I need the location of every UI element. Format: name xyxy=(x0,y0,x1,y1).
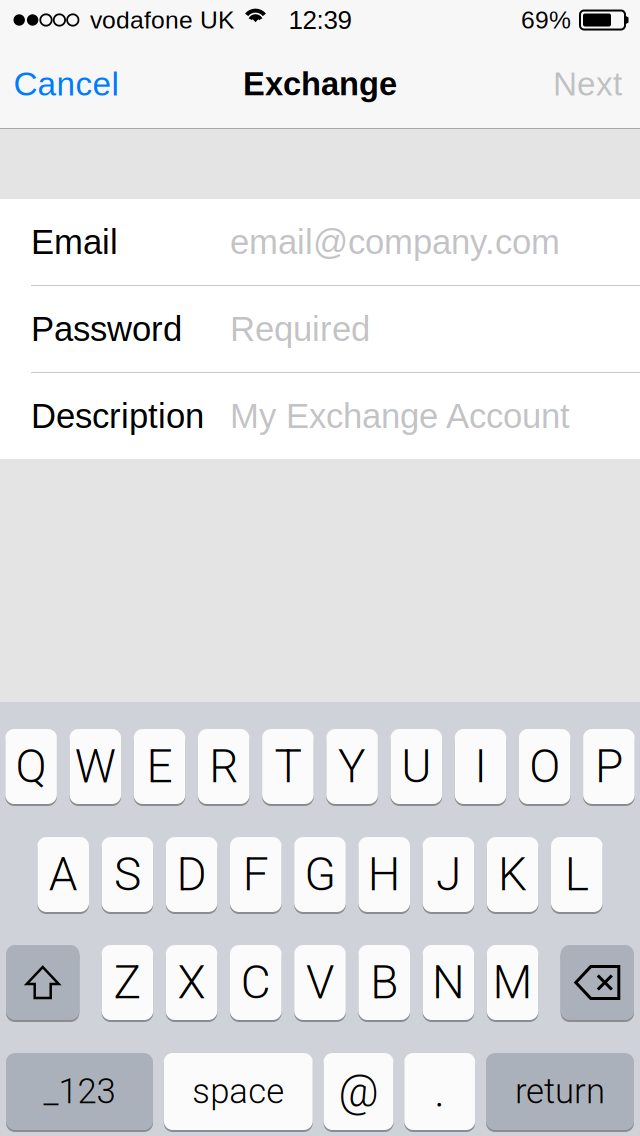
staticText: 12:39 xyxy=(288,5,351,34)
staticText: Email xyxy=(31,223,118,261)
staticText: I xyxy=(474,739,486,793)
button[interactable]: . xyxy=(404,1052,475,1131)
button[interactable]: V xyxy=(294,944,346,1021)
button[interactable]: _123 xyxy=(6,1052,153,1131)
button[interactable]: Email xyxy=(0,199,640,285)
staticText: Description xyxy=(31,397,204,435)
staticText: Password xyxy=(31,310,182,348)
staticText: E xyxy=(146,739,172,793)
button[interactable]: space xyxy=(164,1052,313,1131)
staticText: A xyxy=(49,847,78,901)
button[interactable]: Cancel xyxy=(0,40,138,128)
button[interactable]: L xyxy=(551,836,603,913)
button[interactable]: S xyxy=(102,836,153,913)
button[interactable]: E xyxy=(134,728,185,805)
staticText: 69% xyxy=(521,6,571,34)
staticText: T xyxy=(274,739,301,793)
staticText: . xyxy=(434,1066,445,1117)
button[interactable]: return xyxy=(486,1052,634,1131)
staticText: Z xyxy=(113,955,141,1009)
staticText: S xyxy=(114,847,141,901)
button[interactable]: Password xyxy=(0,286,640,372)
button[interactable]: G xyxy=(294,836,346,913)
staticText: return xyxy=(515,1071,605,1112)
staticText: @ xyxy=(338,1066,378,1117)
button[interactable]: @ xyxy=(323,1052,393,1131)
staticText: Cancel xyxy=(13,65,118,103)
staticText: Q xyxy=(16,739,47,793)
staticText: B xyxy=(370,955,398,1009)
button[interactable]: M xyxy=(487,944,538,1021)
staticText: Y xyxy=(338,739,366,793)
staticText: X xyxy=(178,955,206,1009)
staticText: M xyxy=(493,955,533,1009)
button[interactable]: Delete xyxy=(561,944,634,1021)
button[interactable]: B xyxy=(358,944,410,1021)
button[interactable]: D xyxy=(166,836,217,913)
staticText: Required xyxy=(230,310,370,348)
button[interactable]: Q xyxy=(5,728,57,805)
staticText: C xyxy=(241,955,271,1009)
staticText: K xyxy=(498,847,527,901)
staticText: L xyxy=(565,847,589,901)
staticText: W xyxy=(75,739,116,793)
staticText: Exchange xyxy=(243,66,397,102)
button[interactable]: I xyxy=(455,728,506,805)
staticText: N xyxy=(432,955,465,1009)
button[interactable]: Next xyxy=(533,40,640,128)
staticText: U xyxy=(401,739,431,793)
staticText: space xyxy=(192,1071,284,1112)
button[interactable]: Shift xyxy=(6,944,79,1021)
button[interactable]: T xyxy=(262,728,314,805)
staticText: R xyxy=(209,739,238,793)
button[interactable]: P xyxy=(583,728,635,805)
button[interactable]: U xyxy=(390,728,442,805)
button[interactable]: F xyxy=(230,836,282,913)
staticText: vodafone UK xyxy=(90,6,234,34)
button[interactable]: J xyxy=(423,836,474,913)
staticText: H xyxy=(368,847,401,901)
button[interactable]: C xyxy=(230,944,282,1021)
button[interactable]: O xyxy=(519,728,570,805)
button[interactable]: Z xyxy=(102,944,153,1021)
button[interactable]: N xyxy=(423,944,474,1021)
button[interactable]: Y xyxy=(326,728,378,805)
button[interactable]: K xyxy=(487,836,538,913)
button[interactable]: Description xyxy=(0,373,640,459)
staticText: J xyxy=(436,847,461,901)
staticText: Next xyxy=(553,65,622,103)
button[interactable]: X xyxy=(166,944,217,1021)
staticText: email@company.com xyxy=(230,223,560,261)
staticText: V xyxy=(306,955,334,1009)
button[interactable]: W xyxy=(69,728,121,805)
staticText: G xyxy=(304,847,335,901)
button[interactable]: A xyxy=(37,836,89,913)
staticText: F xyxy=(243,847,269,901)
button[interactable]: R xyxy=(198,728,249,805)
staticText: P xyxy=(595,739,623,793)
staticText: D xyxy=(177,847,207,901)
staticText: My Exchange Account xyxy=(230,397,570,435)
button[interactable]: H xyxy=(358,836,410,913)
staticText: _123 xyxy=(43,1071,115,1112)
staticText: O xyxy=(529,739,560,793)
